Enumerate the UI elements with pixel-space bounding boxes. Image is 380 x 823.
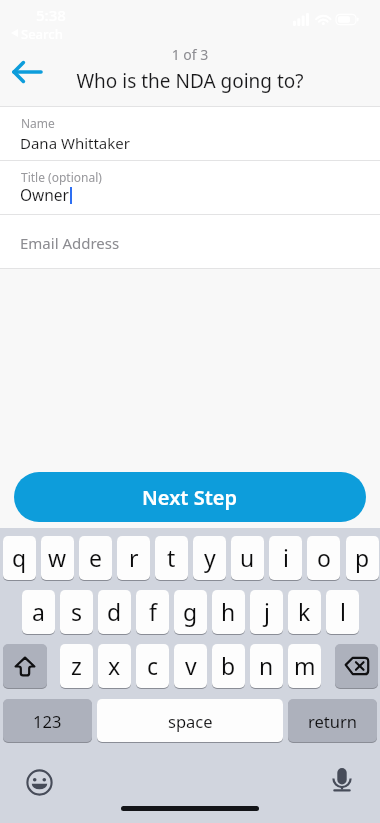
button[interactable]: q — [3, 536, 36, 580]
button[interactable]: s — [60, 590, 93, 634]
staticText: b — [221, 650, 236, 681]
button[interactable]: b — [212, 644, 245, 688]
button[interactable]: r — [117, 536, 150, 580]
staticText: p — [355, 542, 370, 573]
button[interactable]: c — [136, 644, 169, 688]
button[interactable]: n — [250, 644, 283, 688]
staticText: q — [12, 542, 27, 573]
button[interactable]: v — [174, 644, 207, 688]
staticText: t — [167, 542, 176, 573]
staticText: u — [240, 542, 255, 573]
button[interactable]: Dictation — [329, 767, 355, 793]
button[interactable]: j — [250, 590, 283, 634]
button[interactable]: u — [231, 536, 264, 580]
staticText: s — [71, 596, 83, 627]
staticText: l — [340, 596, 346, 627]
staticText: n — [259, 650, 274, 681]
button[interactable]: f — [136, 590, 169, 634]
staticText: Email Address — [20, 233, 120, 253]
button[interactable]: i — [269, 536, 302, 580]
button[interactable]: p — [346, 536, 379, 580]
staticText: space — [168, 710, 213, 732]
button[interactable]: l — [326, 590, 359, 634]
staticText: r — [129, 542, 139, 573]
staticText: v — [185, 650, 197, 681]
staticText: y — [204, 542, 216, 573]
staticText: m — [294, 650, 316, 681]
button[interactable]: w — [41, 536, 74, 580]
button[interactable]: Name — [0, 106, 380, 160]
button[interactable]: k — [288, 590, 321, 634]
staticText: Name — [21, 115, 55, 131]
staticText: h — [221, 596, 236, 627]
staticText: i — [283, 542, 289, 573]
staticText: f — [149, 596, 157, 627]
button[interactable]: Shift — [3, 644, 47, 688]
button[interactable]: Back — [3, 52, 49, 92]
button[interactable]: y — [193, 536, 226, 580]
button[interactable]: x — [98, 644, 131, 688]
staticText: 1 of 3 — [0, 45, 380, 64]
staticText: d — [107, 596, 122, 627]
button[interactable]: h — [212, 590, 245, 634]
button[interactable]: o — [307, 536, 340, 580]
staticText: Dana Whittaker — [20, 133, 130, 153]
staticText: g — [183, 596, 198, 627]
staticText: o — [317, 542, 331, 573]
staticText: c — [147, 650, 159, 681]
staticText: z — [71, 650, 82, 681]
staticText: e — [89, 542, 102, 573]
button[interactable]: m — [288, 644, 321, 688]
button[interactable]: e — [79, 536, 112, 580]
staticText: return — [308, 710, 357, 732]
button[interactable]: 123 — [3, 699, 92, 742]
button[interactable]: Email Address — [0, 214, 380, 268]
button[interactable]: g — [174, 590, 207, 634]
button[interactable]: Next Step — [14, 472, 366, 522]
staticText: Next Step — [142, 484, 238, 511]
button[interactable]: z — [60, 644, 93, 688]
button[interactable]: a — [22, 590, 55, 634]
staticText: Owner — [20, 184, 70, 205]
button[interactable]: Emoji keyboard — [25, 768, 53, 796]
staticText: k — [298, 596, 311, 627]
button[interactable]: t — [155, 536, 188, 580]
button[interactable]: Backspace — [335, 644, 378, 688]
staticText: Who is the NDA going to? — [0, 68, 380, 94]
staticText: a — [32, 596, 45, 627]
staticText: j — [264, 596, 270, 627]
staticText: Title (optional) — [21, 169, 102, 185]
button[interactable]: d — [98, 590, 131, 634]
staticText: 123 — [33, 710, 62, 732]
button[interactable]: return — [288, 699, 377, 742]
staticText: x — [108, 650, 121, 681]
button[interactable]: Title (optional) — [0, 161, 380, 214]
staticText: w — [48, 542, 67, 573]
button[interactable]: space — [97, 699, 283, 742]
